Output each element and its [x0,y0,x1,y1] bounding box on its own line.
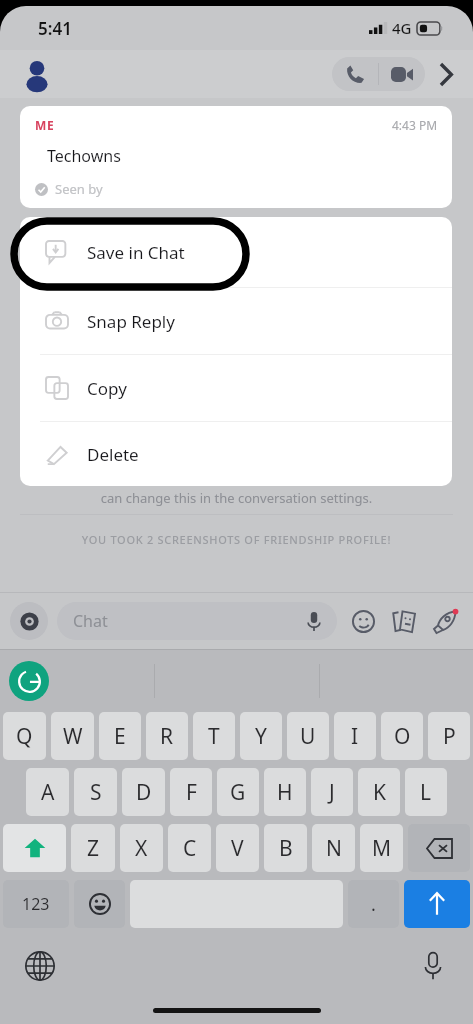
staticText: 5:41 [38,17,72,40]
staticText: 4:43 PM [392,117,438,133]
button[interactable]: A [26,768,69,816]
staticText: 123 [22,893,50,915]
button[interactable]: Emoji keyboard [74,880,125,928]
button[interactable]: S [74,768,117,816]
staticText: Save in Chat [87,241,185,264]
staticText: Z [87,834,100,863]
staticText: R [160,722,174,751]
staticText: YOU TOOK 2 SCREENSHOTS OF FRIENDSHIP PRO… [0,532,473,547]
button[interactable]: Camera [10,602,48,640]
staticText: E [114,722,126,751]
staticText: A [41,778,55,807]
staticText: W [63,722,83,751]
staticText: Snap Reply [87,310,175,333]
staticText: D [136,778,152,807]
staticText: P [443,722,456,751]
staticText: L [420,778,432,807]
button[interactable]: O [381,712,423,760]
staticText: J [329,778,335,807]
button[interactable]: D [122,768,165,816]
button[interactable]: C [168,824,211,872]
button[interactable]: Shift [3,824,66,872]
button[interactable]: L [405,768,447,816]
button[interactable]: Voice input [411,944,455,988]
button[interactable]: Video call [379,57,425,91]
staticText: G [230,778,246,807]
button[interactable]: Backspace [408,824,470,872]
button[interactable]: K [358,768,400,816]
staticText: V [231,834,244,863]
staticText: ME [35,117,55,133]
button[interactable]: Copy [20,355,452,421]
staticText: T [208,722,220,751]
button[interactable]: X [120,824,163,872]
button[interactable]: M [360,824,403,872]
button[interactable]: Profile [20,57,54,91]
staticText: K [373,778,386,807]
staticText: U [300,722,316,751]
button[interactable]: Change keyboard [18,944,62,988]
button[interactable]: Rocket [427,603,463,639]
staticText: O [394,722,411,751]
button[interactable]: 123 [3,880,69,928]
button[interactable]: Q [3,712,46,760]
button[interactable]: G [217,768,259,816]
button[interactable]: I [334,712,376,760]
staticText: F [186,778,197,807]
button[interactable]: Voice call [332,57,378,91]
staticText: can change this in the conversation sett… [0,489,473,507]
button[interactable]: Save in Chat [20,217,452,287]
button[interactable]: H [264,768,306,816]
button[interactable]: Z [71,824,115,872]
staticText: 4G [392,18,412,38]
staticText: Q [16,722,33,751]
button[interactable]: Emoji [347,605,379,637]
staticText: H [277,778,293,807]
button[interactable]: More [425,54,465,94]
button[interactable]: P [428,712,470,760]
button[interactable]: F [170,768,212,816]
button[interactable]: Chat [57,602,337,640]
button[interactable]: Snap Reply [20,288,452,354]
button[interactable]: Grammarly [9,661,49,701]
button[interactable]: E [99,712,141,760]
button[interactable]: Send [404,880,470,928]
button[interactable]: B [264,824,307,872]
staticText: Seen by [55,180,103,198]
staticText: C [183,834,197,863]
staticText: Delete [87,443,139,466]
staticText: X [135,834,148,863]
staticText: M [372,834,392,863]
staticText: N [326,834,342,863]
button[interactable]: . [348,880,399,928]
button[interactable]: Y [240,712,282,760]
staticText: Y [255,722,267,751]
button[interactable]: N [312,824,355,872]
staticText: B [279,834,293,863]
button[interactable]: J [311,768,353,816]
staticText: Techowns [47,145,121,167]
button[interactable]: T [193,712,235,760]
button[interactable]: U [287,712,329,760]
staticText: Chat [73,610,108,632]
staticText: . [371,892,376,917]
button[interactable]: Stickers [387,604,421,638]
button[interactable]: R [146,712,188,760]
staticText: I [351,722,359,751]
button[interactable]: W [51,712,94,760]
staticText: Copy [87,377,127,400]
button[interactable]: Delete [20,422,452,486]
button[interactable]: V [216,824,259,872]
staticText: S [90,778,102,807]
